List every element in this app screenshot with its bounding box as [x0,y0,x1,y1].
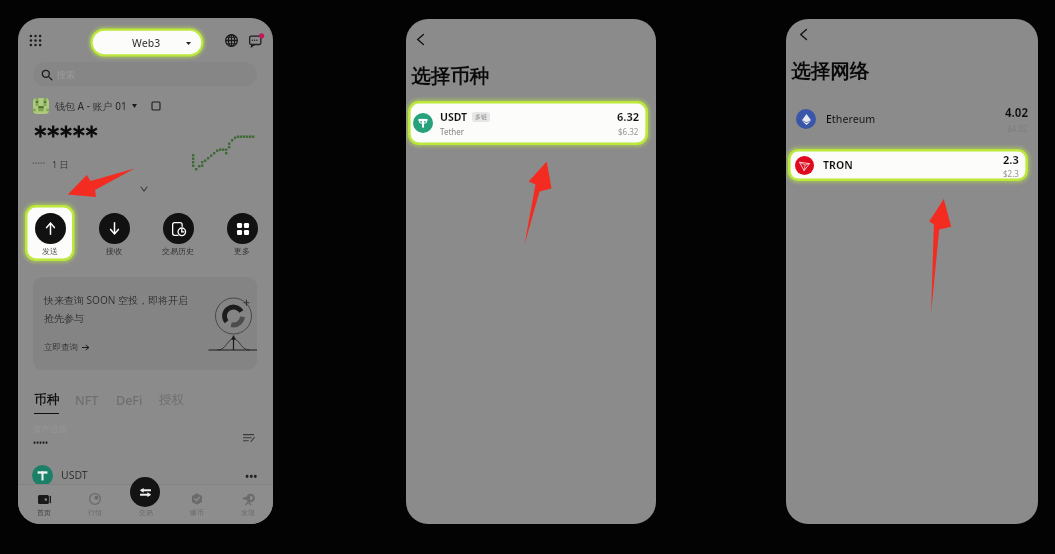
button[interactable]: 更多 [216,206,268,261]
staticText: 4.02 [1005,105,1028,121]
staticText: Ethereum [826,112,876,126]
staticText: 抢先参与 [44,312,84,325]
staticText: 1 日 [52,158,69,170]
button[interactable]: Sort assets [239,428,257,446]
staticText: 更多 [234,246,250,256]
button[interactable]: Language [221,30,241,50]
staticText: $6.32 [618,126,639,137]
staticText: 交易历史 [162,246,194,256]
button[interactable]: 发现 [222,484,273,524]
staticText: 6.32 [617,109,639,124]
button[interactable]: NFT [75,392,99,409]
button[interactable]: USDT [32,464,258,486]
button[interactable]: Ethereum [796,103,1028,135]
staticText: 接收 [106,246,122,256]
button[interactable]: Copy address [149,99,163,113]
staticText: $2.3 [1003,168,1019,179]
button[interactable]: 交易历史 [152,206,204,261]
button[interactable]: 授权 [159,392,184,408]
button[interactable]: 发送 [24,206,76,261]
button[interactable]: Web3 [91,29,204,57]
button[interactable]: 币种 [34,392,59,408]
button[interactable]: 首页 [18,484,69,524]
staticText: Tether [440,126,465,137]
staticText: 发现 [241,508,255,517]
button[interactable]: USDT [408,101,648,145]
staticText: 多链 [475,113,487,121]
staticText: 搜索 [57,69,75,80]
button[interactable]: 行情 [69,484,120,524]
staticText: ••••• [33,437,49,448]
staticText: 立即查询 [44,342,78,353]
staticText: 选择网络 [791,59,869,84]
staticText: $4.02 [1007,123,1028,134]
staticText: 赚币 [190,508,204,517]
staticText: 发送 [42,246,58,256]
button[interactable]: Back [408,27,432,51]
button[interactable]: DeFi [116,392,143,409]
staticText: 交易 [139,508,153,517]
staticText: 快来查询 SOON 空投，即将开启 [44,293,188,307]
button[interactable]: Back [791,22,815,46]
staticText: Web3 [132,36,161,50]
staticText: TRON [823,158,853,172]
button[interactable]: 快来查询 SOON 空投，即将开启 [33,277,257,370]
button[interactable]: 搜索 [33,62,257,86]
staticText: 首页 [37,508,51,517]
button[interactable]: Trade [130,477,160,507]
staticText: 行情 [88,508,102,517]
button[interactable]: Messages [246,30,266,50]
staticText: 选择币种 [411,64,489,89]
button[interactable]: 交易 [120,484,171,524]
staticText: 钱包 A - 账户 01 [55,99,127,113]
staticText: ••••• [32,159,46,169]
button[interactable]: 赚币 [171,484,222,524]
staticText: USDT [440,110,468,124]
staticText: 2.3 [1003,152,1019,167]
staticText: USDT [61,468,88,482]
button[interactable]: TRON [788,149,1028,181]
staticText: ••• [245,468,258,483]
button[interactable]: Apps [25,30,46,51]
button[interactable]: 接收 [88,206,140,261]
button[interactable] [25,205,75,261]
